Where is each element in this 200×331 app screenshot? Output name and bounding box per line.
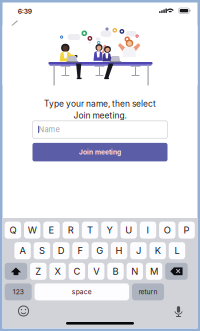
staticText: I [146,224,149,236]
button[interactable]: V [88,263,104,280]
button[interactable]: Dictate [172,305,184,317]
button[interactable]: space [35,283,129,300]
button[interactable]: W [24,222,40,239]
button[interactable]: C [69,263,85,280]
staticText: G [96,245,103,256]
button[interactable]: S [34,242,50,259]
button[interactable]: Join meeting [32,143,167,161]
staticText: J [136,245,141,256]
button[interactable]: H [111,242,127,259]
button[interactable]: Q [5,222,21,239]
staticText: H [116,245,123,256]
staticText: C [73,266,80,277]
staticText: return [138,288,157,296]
button[interactable]: R [63,222,79,239]
button[interactable]: L [169,242,185,259]
staticText: N [131,266,138,277]
button[interactable]: return [132,283,164,300]
staticText: X [55,266,61,277]
staticText: Join meeting [79,148,121,156]
button[interactable]: X [49,263,66,280]
button[interactable]: O [159,222,175,239]
button[interactable]: F [72,242,89,259]
button[interactable]: G [92,242,108,259]
staticText: P [184,224,190,236]
staticText: K [155,245,161,256]
staticText: O [164,224,171,236]
button[interactable]: J [130,242,147,259]
staticText: Z [35,266,41,277]
staticText: 6:39 [18,7,32,15]
staticText: Q [9,224,16,236]
button[interactable]: A [14,242,31,259]
staticText: U [125,224,132,236]
button[interactable]: B [107,263,124,280]
button[interactable]: D [53,242,69,259]
button[interactable]: Delete [165,263,188,280]
button[interactable]: M [146,263,162,280]
button[interactable]: Emoji keyboard [17,305,29,317]
staticText: F [77,245,83,256]
staticText: B [112,266,118,277]
staticText: space [72,288,92,296]
staticText: Join meeting. [73,110,126,121]
button[interactable]: T [82,222,98,239]
staticText: W [28,224,37,236]
staticText: A [20,245,26,256]
staticText: Type your name, then select [44,98,156,109]
staticText: L [174,245,179,256]
staticText: Name [38,125,59,134]
button[interactable]: N [127,263,143,280]
staticText: M [150,266,158,277]
staticText: V [93,266,99,277]
staticText: T [87,224,93,236]
staticText: E [48,224,54,236]
button[interactable]: E [43,222,60,239]
staticText: 123 [13,288,24,296]
button[interactable]: Back [5,16,23,34]
button[interactable]: Z [30,263,46,280]
button[interactable]: Shift [5,263,27,280]
button[interactable]: 123 [5,283,32,300]
button[interactable]: P [178,222,195,239]
staticText: R [68,224,74,236]
button[interactable]: I [140,222,156,239]
button[interactable]: K [149,242,166,259]
staticText: S [39,245,45,256]
staticText: Y [106,224,112,236]
button[interactable]: Y [101,222,118,239]
button[interactable]: U [120,222,137,239]
staticText: D [58,245,65,256]
